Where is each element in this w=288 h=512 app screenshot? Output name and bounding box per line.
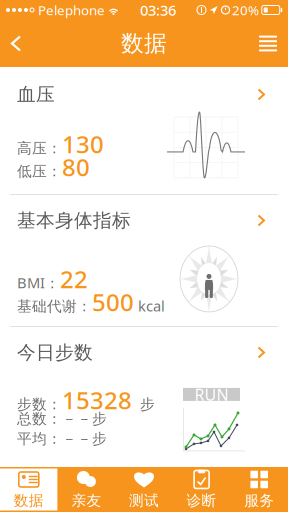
staticText: Pelephone bbox=[38, 1, 105, 19]
button[interactable]: 亲友 bbox=[58, 468, 115, 510]
button[interactable]: 诊断 bbox=[173, 468, 230, 510]
staticText: 20% bbox=[232, 1, 259, 19]
staticText: 130 bbox=[62, 128, 104, 160]
staticText: 数据 bbox=[14, 491, 44, 509]
button[interactable]: 基本身体指标 bbox=[0, 195, 288, 326]
staticText: 诊断 bbox=[187, 491, 217, 509]
button[interactable]: 服务 bbox=[230, 468, 288, 510]
staticText: 80 bbox=[62, 151, 90, 183]
staticText: 步数： bbox=[17, 395, 62, 413]
staticText: 血压 bbox=[17, 83, 55, 106]
staticText: 500 bbox=[92, 286, 134, 318]
button[interactable]: Menu bbox=[248, 22, 288, 64]
staticText: 测试 bbox=[129, 491, 159, 509]
staticText: 高压： bbox=[17, 139, 62, 157]
staticText: 03:36 bbox=[140, 0, 176, 20]
button[interactable]: Back bbox=[0, 22, 38, 64]
staticText: 亲友 bbox=[71, 491, 101, 509]
staticText: 平均：－－步 bbox=[17, 430, 107, 448]
button[interactable]: 血压 bbox=[0, 67, 288, 194]
staticText: 今日步数 bbox=[17, 341, 93, 364]
staticText: 低压： bbox=[17, 162, 62, 180]
button[interactable]: 今日步数 bbox=[0, 327, 288, 466]
staticText: 步 bbox=[132, 395, 155, 413]
staticText: 15328 bbox=[62, 384, 132, 416]
staticText: RUN bbox=[194, 384, 228, 405]
staticText: 数据 bbox=[121, 30, 167, 57]
staticText: 服务 bbox=[244, 491, 274, 509]
button[interactable]: 测试 bbox=[115, 468, 173, 510]
staticText: 22 bbox=[60, 263, 88, 295]
staticText: 基础代谢： bbox=[17, 297, 92, 315]
staticText: 总数：－－步 bbox=[17, 410, 107, 428]
staticText: kcal bbox=[134, 296, 165, 315]
button[interactable]: 数据 bbox=[0, 468, 58, 510]
staticText: BMI： bbox=[17, 273, 60, 292]
staticText: 基本身体指标 bbox=[17, 209, 131, 232]
